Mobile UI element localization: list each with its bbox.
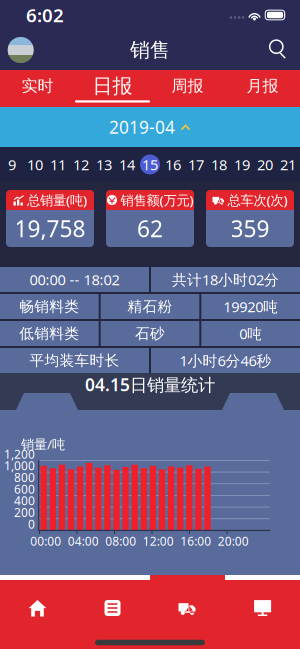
button[interactable]: 11 [46, 147, 69, 182]
button[interactable]: Search [265, 34, 293, 66]
staticText: 16 [165, 155, 181, 174]
staticText: 600 [14, 481, 35, 497]
button[interactable]: 14 [115, 147, 138, 182]
staticText: 12:00 [143, 533, 174, 549]
button[interactable]: 总车次(次) [206, 190, 294, 247]
button[interactable]: 13 [92, 147, 115, 182]
staticText: 2019-04 [109, 115, 175, 138]
staticText: 20 [257, 155, 273, 174]
button[interactable]: 2019-04 [0, 107, 300, 147]
staticText: 低销料类 [19, 324, 79, 342]
staticText: 18 [211, 155, 227, 174]
staticText: 日报 [92, 74, 132, 98]
staticText: 04.15日销量统计 [85, 373, 215, 396]
staticText: 16:00 [180, 533, 211, 549]
button[interactable]: 10 [23, 147, 46, 182]
button[interactable]: 18 [207, 147, 230, 182]
staticText: 9 [8, 155, 16, 174]
staticText: 14 [119, 155, 135, 174]
staticText: 销量/吨 [21, 435, 65, 453]
staticText: 月报 [246, 76, 278, 96]
button[interactable]: 总销量(吨) [6, 190, 94, 247]
button[interactable]: 周报 [150, 70, 225, 107]
staticText: 17 [188, 155, 204, 174]
staticText: 200 [14, 504, 35, 520]
staticText: 1,000 [4, 458, 35, 474]
staticText: 精石粉 [127, 297, 172, 315]
button[interactable]: 12 [69, 147, 92, 182]
staticText: 销售额(万元) [120, 191, 193, 209]
staticText: 21 [280, 155, 296, 174]
staticText: 00:00 [30, 533, 61, 549]
button[interactable]: 月报 [225, 70, 300, 107]
staticText: 0 [28, 516, 35, 532]
staticText: 19 [234, 155, 250, 174]
button[interactable]: 销售额(万元) [106, 190, 194, 247]
staticText: 400 [14, 493, 35, 509]
button[interactable]: 统计 [225, 580, 300, 636]
staticText: 周报 [171, 76, 203, 96]
staticText: 石砂 [135, 324, 165, 342]
staticText: 20:00 [218, 533, 249, 549]
staticText: 19920吨 [223, 297, 278, 316]
button[interactable]: 21 [276, 147, 299, 182]
staticText: 总销量(吨) [27, 191, 87, 209]
staticText: 04:00 [68, 533, 99, 549]
staticText: 13 [96, 155, 112, 174]
staticText: 平均装车时长 [29, 351, 119, 369]
button[interactable]: 20 [253, 147, 276, 182]
staticText: 00:00 -- 18:02 [29, 270, 119, 289]
staticText: 畅销料类 [19, 297, 79, 315]
staticText: 10 [27, 155, 43, 174]
staticText: 359 [230, 213, 269, 243]
staticText: 共计18小时02分 [172, 270, 279, 289]
button[interactable]: 15 [138, 147, 161, 182]
staticText: 08:00 [105, 533, 136, 549]
button[interactable]: 16 [161, 147, 184, 182]
button[interactable]: 首页 [0, 580, 75, 636]
staticText: 19,758 [14, 213, 85, 243]
staticText: 1,200 [4, 446, 35, 462]
staticText: 11 [50, 155, 66, 174]
staticText: 62 [137, 213, 163, 243]
staticText: 销售 [130, 38, 170, 62]
button[interactable]: 实时 [0, 70, 75, 107]
staticText: 总车次(次) [227, 191, 287, 209]
staticText: 0吨 [239, 324, 262, 343]
staticText: 12 [73, 155, 89, 174]
button[interactable]: 日报 [75, 70, 150, 107]
button[interactable]: 17 [184, 147, 207, 182]
staticText: 实时 [21, 76, 53, 96]
button[interactable]: 报表 [75, 580, 150, 636]
staticText: 15 [142, 155, 158, 174]
button[interactable]: 9 [0, 147, 23, 182]
staticText: 6:02 [26, 3, 64, 27]
staticText: 800 [14, 469, 35, 485]
button[interactable]: 19 [230, 147, 253, 182]
staticText: 1小时6分46秒 [179, 351, 271, 370]
button[interactable]: Profile [5, 33, 37, 67]
button[interactable]: 运输 [150, 580, 225, 636]
